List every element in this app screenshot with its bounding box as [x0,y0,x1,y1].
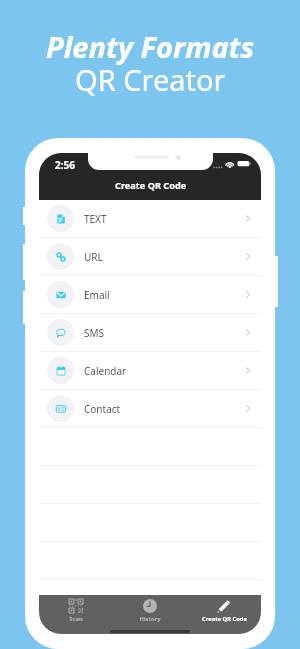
staticText: Scan [69,615,83,623]
staticText: QR Creator [75,60,226,99]
staticText: History [139,615,161,623]
button[interactable]: Scan [39,595,113,634]
button[interactable]: History [113,595,187,634]
staticText: TEXT [84,212,107,226]
button[interactable]: Calendar [39,352,261,390]
staticText: Contact [84,402,121,416]
staticText: URL [84,250,103,264]
button[interactable]: Contact [39,390,261,428]
staticText: Create QR Code [202,615,247,623]
button[interactable]: URL [39,238,261,276]
staticText: 2:56 [55,158,75,172]
button[interactable]: Email [39,276,261,314]
staticText: Plenty Formats [46,27,255,66]
staticText: Create QR Code [115,179,187,192]
button[interactable]: SMS [39,314,261,352]
button[interactable]: Create QR Code [187,595,261,634]
staticText: SMS [84,326,105,340]
staticText: Email [84,288,110,302]
button[interactable]: TEXT [39,200,261,238]
staticText: Calendar [84,364,127,378]
